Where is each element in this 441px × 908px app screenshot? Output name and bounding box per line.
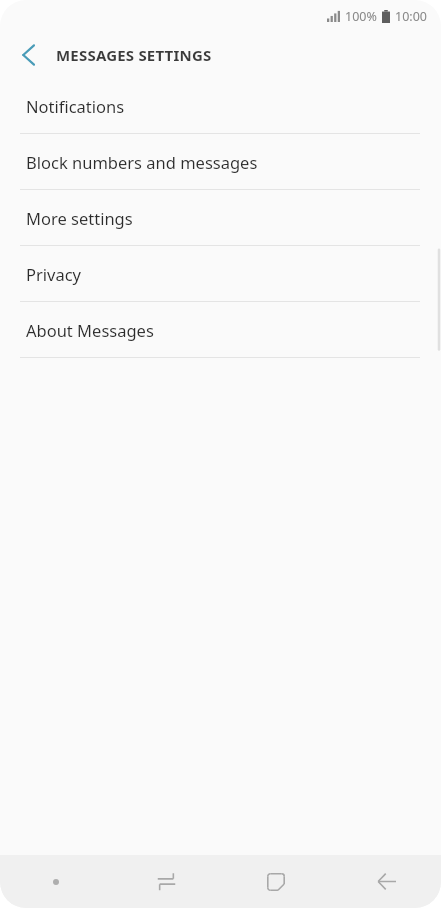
button[interactable]: Back (331, 855, 441, 908)
button[interactable]: Block numbers and messages (0, 134, 441, 189)
staticText: About Messages (26, 319, 154, 341)
button[interactable]: About Messages (0, 302, 441, 357)
button[interactable]: Recents (111, 855, 221, 908)
staticText: 100% (345, 8, 377, 25)
button[interactable]: Home (221, 855, 331, 908)
staticText: Block numbers and messages (26, 151, 258, 173)
staticText: More settings (26, 207, 133, 229)
staticText: Privacy (26, 263, 82, 285)
staticText: 10:00 (395, 8, 427, 25)
button[interactable]: Back (0, 32, 56, 78)
staticText: Notifications (26, 95, 125, 117)
button[interactable]: More settings (0, 190, 441, 245)
staticText: MESSAGES SETTINGS (56, 45, 212, 65)
button[interactable]: Notifications (0, 78, 441, 133)
button[interactable]: Privacy (0, 246, 441, 301)
